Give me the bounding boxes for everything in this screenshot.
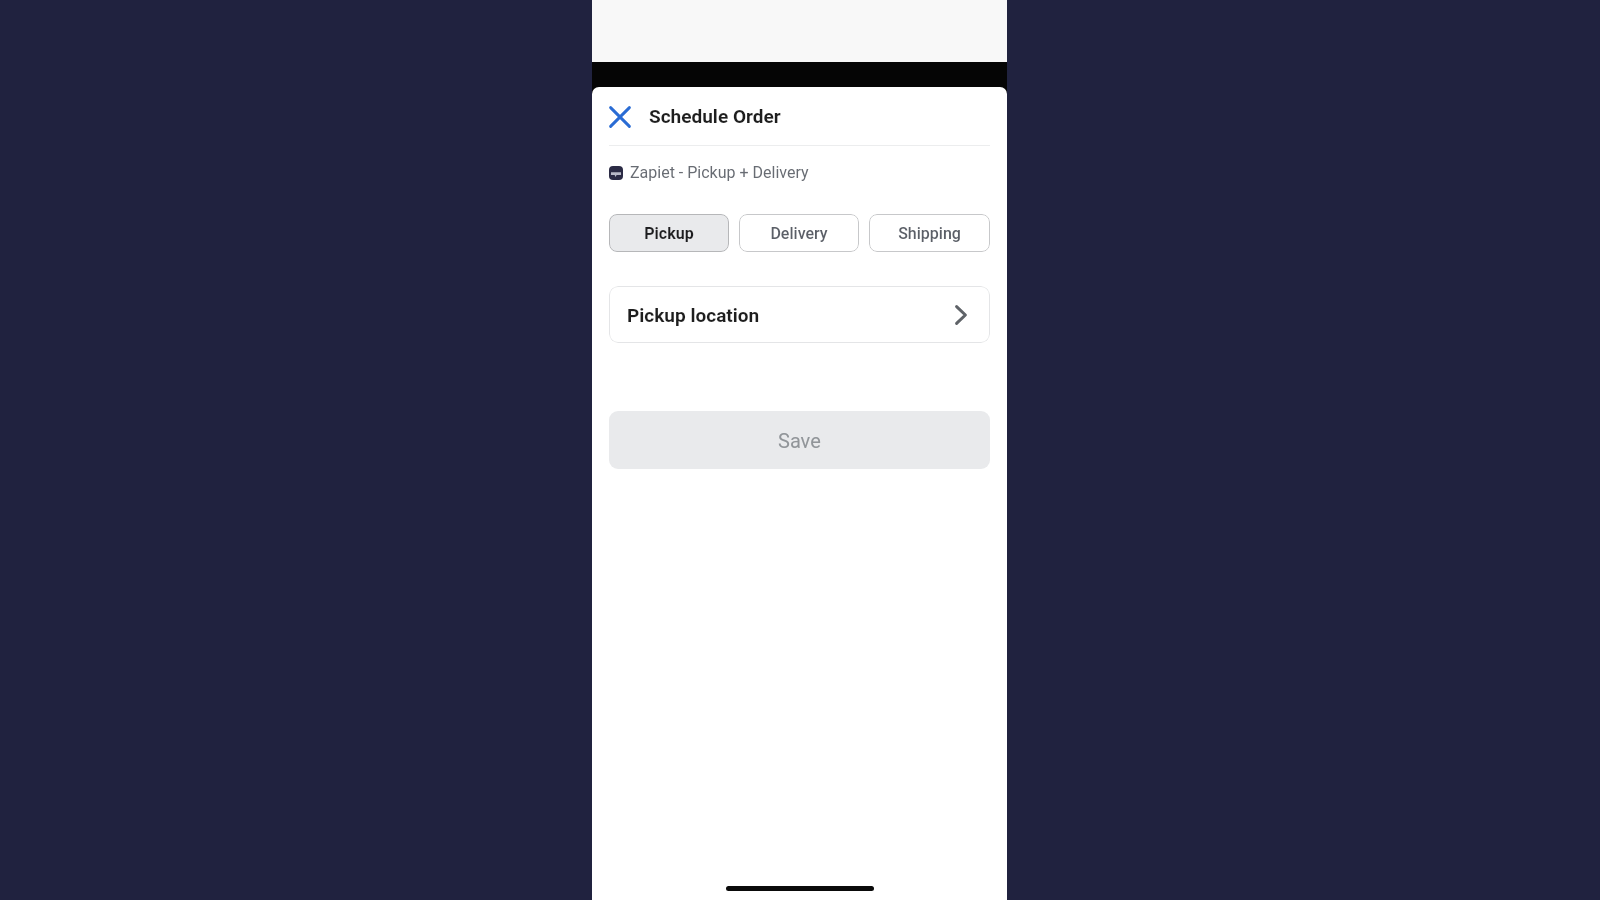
staticText: Save [778, 429, 821, 452]
button[interactable]: Save [609, 411, 990, 469]
staticText: Pickup [644, 224, 694, 243]
staticText: Shipping [898, 224, 961, 243]
button[interactable]: Close [609, 105, 631, 127]
staticText: Delivery [770, 224, 828, 243]
staticText: Pickup location [627, 304, 760, 326]
button[interactable]: Shipping [869, 214, 990, 252]
button[interactable]: Delivery [739, 214, 859, 252]
staticText: Zapiet - Pickup + Delivery [630, 163, 809, 182]
staticText: Schedule Order [649, 105, 781, 127]
button[interactable]: Pickup [609, 214, 729, 252]
other: Zapiet app icon [609, 166, 623, 180]
button[interactable]: Pickup location [609, 286, 990, 343]
